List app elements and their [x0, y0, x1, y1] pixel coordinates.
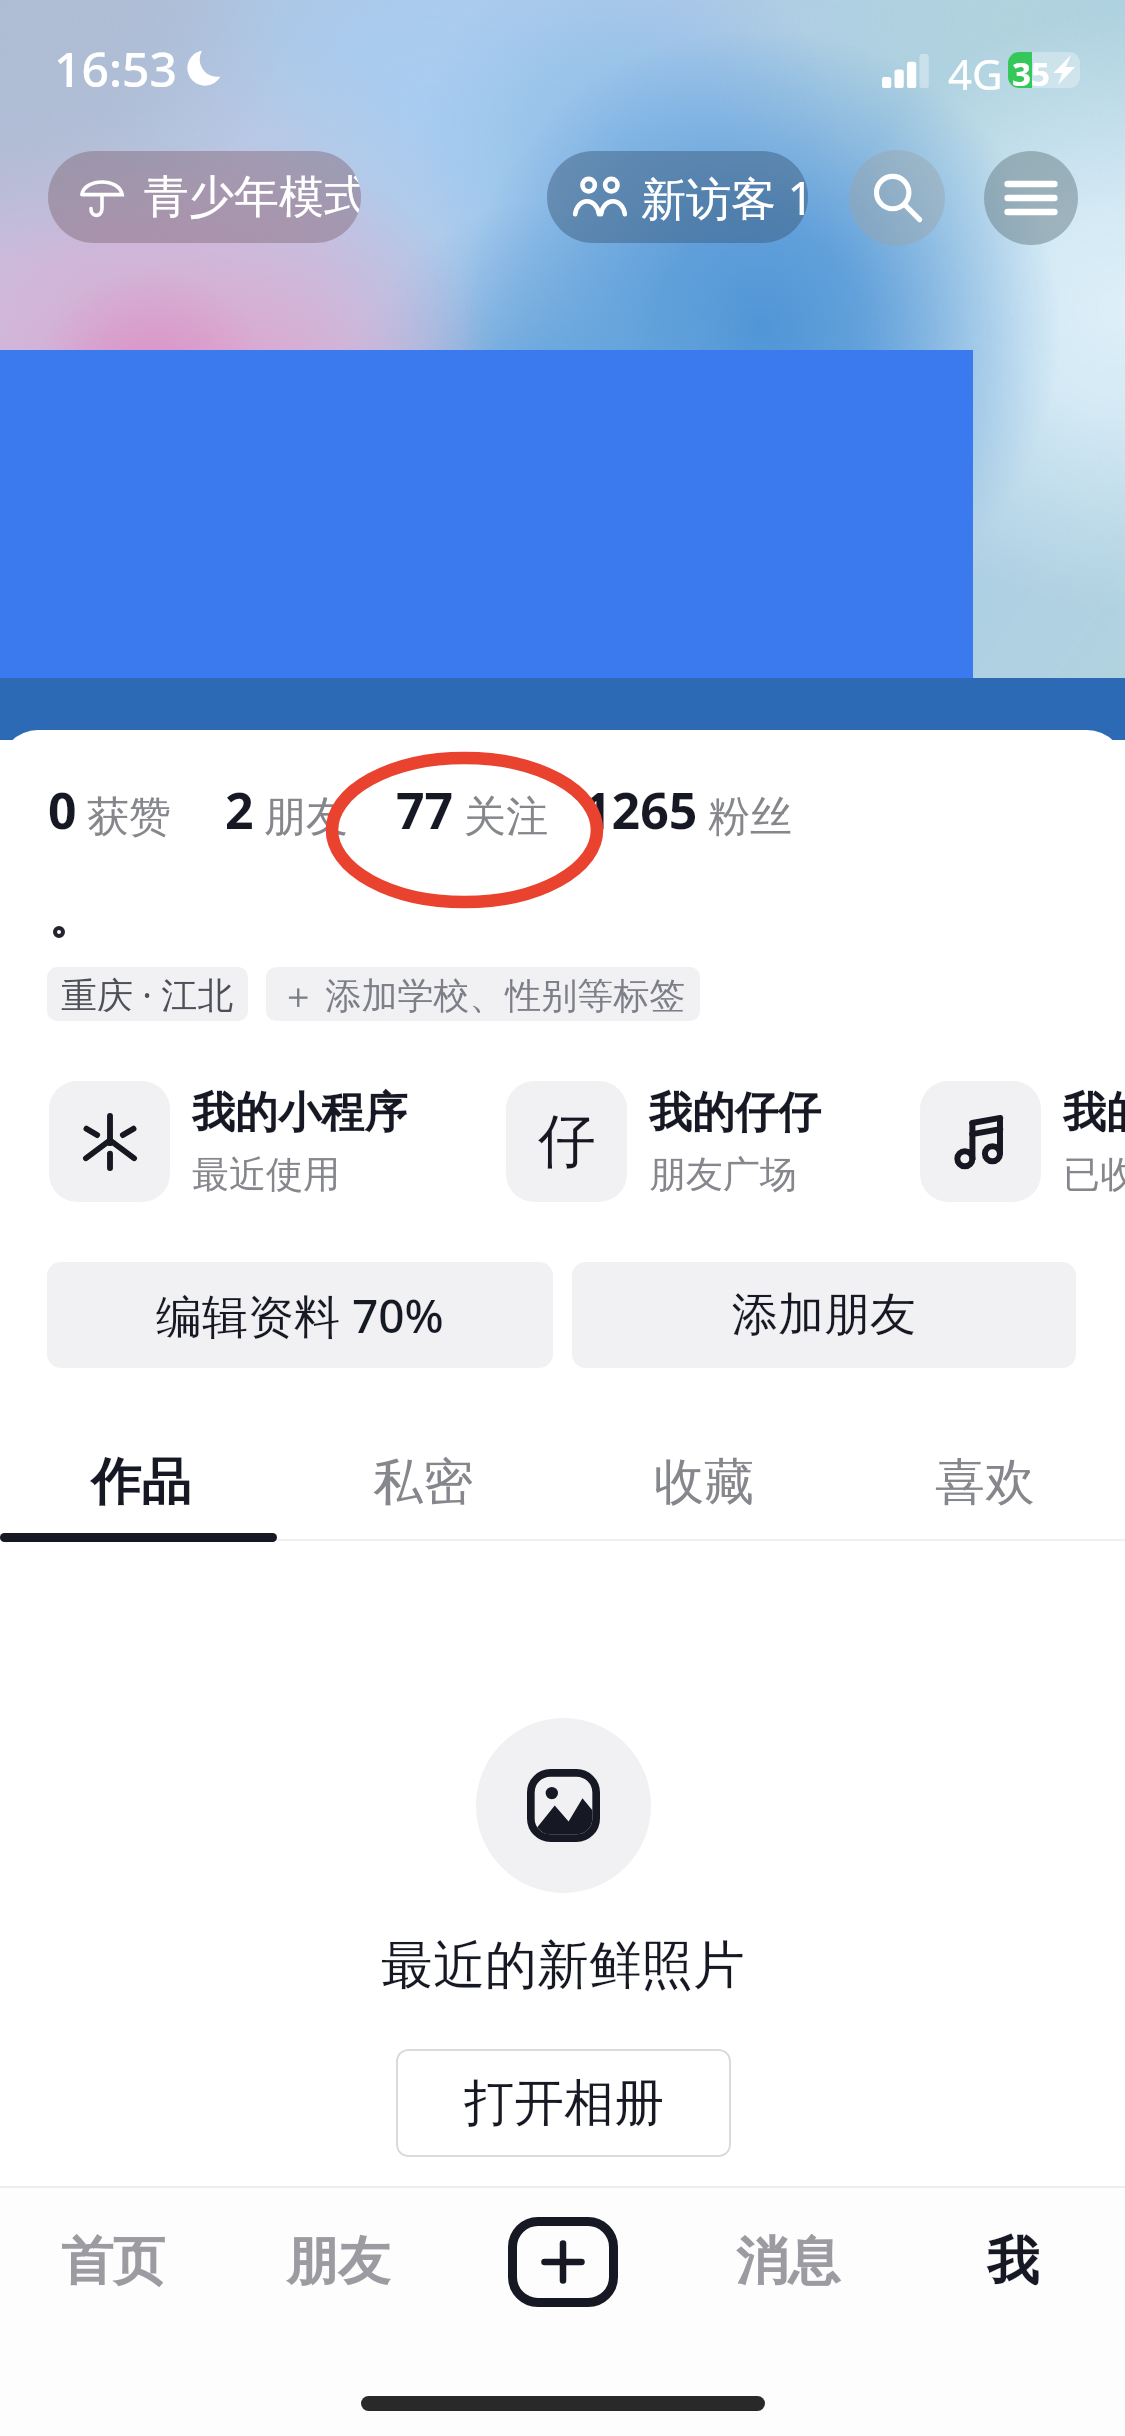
- button[interactable]: 我的小程序: [49, 1081, 749, 1202]
- staticText: 打开相册: [464, 2072, 664, 2135]
- staticText: 我的小程序: [192, 1086, 407, 1140]
- button[interactable]: 重庆 · 江北: [47, 967, 248, 1021]
- button[interactable]: Create: [450, 2188, 675, 2336]
- staticText: 朋友: [286, 2229, 390, 2295]
- staticText: 收藏: [654, 1451, 754, 1514]
- staticText: 最近使用: [192, 1151, 340, 1198]
- staticText: 我的音乐: [1063, 1086, 1125, 1140]
- button[interactable]: 添加朋友: [572, 1262, 1076, 1368]
- button[interactable]: Menu: [984, 151, 1078, 245]
- button[interactable]: 仔: [506, 1081, 1125, 1202]
- button[interactable]: 作品: [0, 1430, 282, 1534]
- staticText: 新访客 1: [641, 167, 808, 228]
- staticText: 添加朋友: [732, 1286, 916, 1344]
- staticText: 4G: [948, 45, 1003, 102]
- staticText: 我的仔仔: [649, 1086, 821, 1140]
- staticText: 关注: [464, 791, 548, 844]
- staticText: 粉丝: [708, 791, 792, 844]
- staticText: 编辑资料 70%: [156, 1284, 444, 1347]
- staticText: 朋友: [264, 791, 348, 844]
- button[interactable]: 2: [225, 776, 348, 844]
- staticText: 16:53: [54, 36, 177, 101]
- button[interactable]: 收藏: [563, 1430, 844, 1534]
- button[interactable]: 0: [48, 776, 171, 844]
- staticText: 作品: [91, 1451, 191, 1514]
- staticText: ＋ 添加学校、性别等标签: [280, 970, 686, 1019]
- staticText: 重庆 · 江北: [61, 970, 234, 1019]
- staticText: 0: [48, 776, 77, 844]
- staticText: 2: [225, 776, 254, 844]
- button[interactable]: Search: [849, 150, 945, 246]
- button[interactable]: 消息: [675, 2188, 900, 2336]
- button[interactable]: 我: [900, 2188, 1125, 2336]
- staticText: 35: [1012, 52, 1050, 87]
- staticText: 朋友广场: [649, 1151, 797, 1198]
- button[interactable]: 首页: [0, 2188, 225, 2336]
- staticText: 喜欢: [935, 1451, 1035, 1514]
- staticText: 我: [987, 2229, 1039, 2295]
- button[interactable]: 1265: [583, 776, 792, 844]
- staticText: 最近的新鲜照片: [381, 1933, 745, 1999]
- staticText: 已收藏: [1063, 1151, 1125, 1198]
- button[interactable]: 青少年模式: [48, 151, 361, 243]
- button[interactable]: 77: [396, 776, 548, 844]
- button[interactable]: 编辑资料 70%: [47, 1262, 553, 1368]
- button[interactable]: 新访客 1: [547, 151, 808, 243]
- staticText: 青少年模式: [144, 169, 361, 226]
- staticText: 77: [396, 776, 454, 844]
- button[interactable]: 喜欢: [844, 1430, 1125, 1534]
- button[interactable]: 朋友: [225, 2188, 450, 2336]
- staticText: 仔: [538, 1105, 596, 1178]
- button[interactable]: 我的音乐: [920, 1081, 1125, 1202]
- staticText: 获赞: [87, 791, 171, 844]
- staticText: 消息: [736, 2229, 840, 2295]
- staticText: 私密: [373, 1451, 473, 1514]
- button[interactable]: ＋ 添加学校、性别等标签: [266, 967, 700, 1021]
- staticText: 首页: [61, 2229, 165, 2295]
- staticText: 1265: [583, 776, 698, 844]
- button[interactable]: 私密: [282, 1430, 563, 1534]
- button[interactable]: 打开相册: [396, 2049, 731, 2157]
